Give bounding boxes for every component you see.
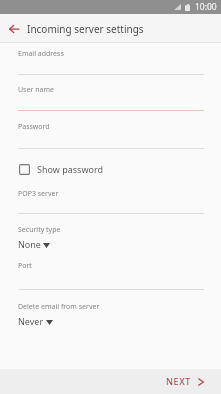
staticText: Never bbox=[18, 315, 44, 327]
staticText: POP3 server bbox=[18, 189, 59, 199]
button[interactable]: Show password bbox=[0, 149, 221, 189]
button[interactable]: Security type bbox=[0, 214, 221, 250]
button[interactable]: NEXT bbox=[156, 376, 221, 388]
button[interactable]: Password bbox=[0, 111, 221, 149]
button[interactable]: Email address bbox=[0, 43, 221, 75]
staticText: Incoming server settings bbox=[27, 22, 144, 36]
staticText: User name bbox=[18, 85, 54, 95]
staticText: Password bbox=[18, 122, 50, 132]
staticText: Port bbox=[18, 261, 32, 271]
staticText: Delete email from server bbox=[18, 302, 100, 312]
button[interactable]: Port bbox=[0, 250, 221, 290]
button[interactable]: Back bbox=[0, 15, 27, 42]
staticText: 10:00 bbox=[195, 1, 217, 13]
staticText: Email address bbox=[18, 49, 64, 59]
staticText: None bbox=[18, 238, 41, 250]
staticText: Security type bbox=[18, 225, 61, 235]
button[interactable]: POP3 server bbox=[0, 189, 221, 214]
staticText: Show password bbox=[37, 163, 103, 175]
button[interactable]: User name bbox=[0, 75, 221, 111]
button[interactable]: Delete email from server bbox=[0, 290, 221, 327]
staticText: NEXT bbox=[166, 375, 191, 387]
